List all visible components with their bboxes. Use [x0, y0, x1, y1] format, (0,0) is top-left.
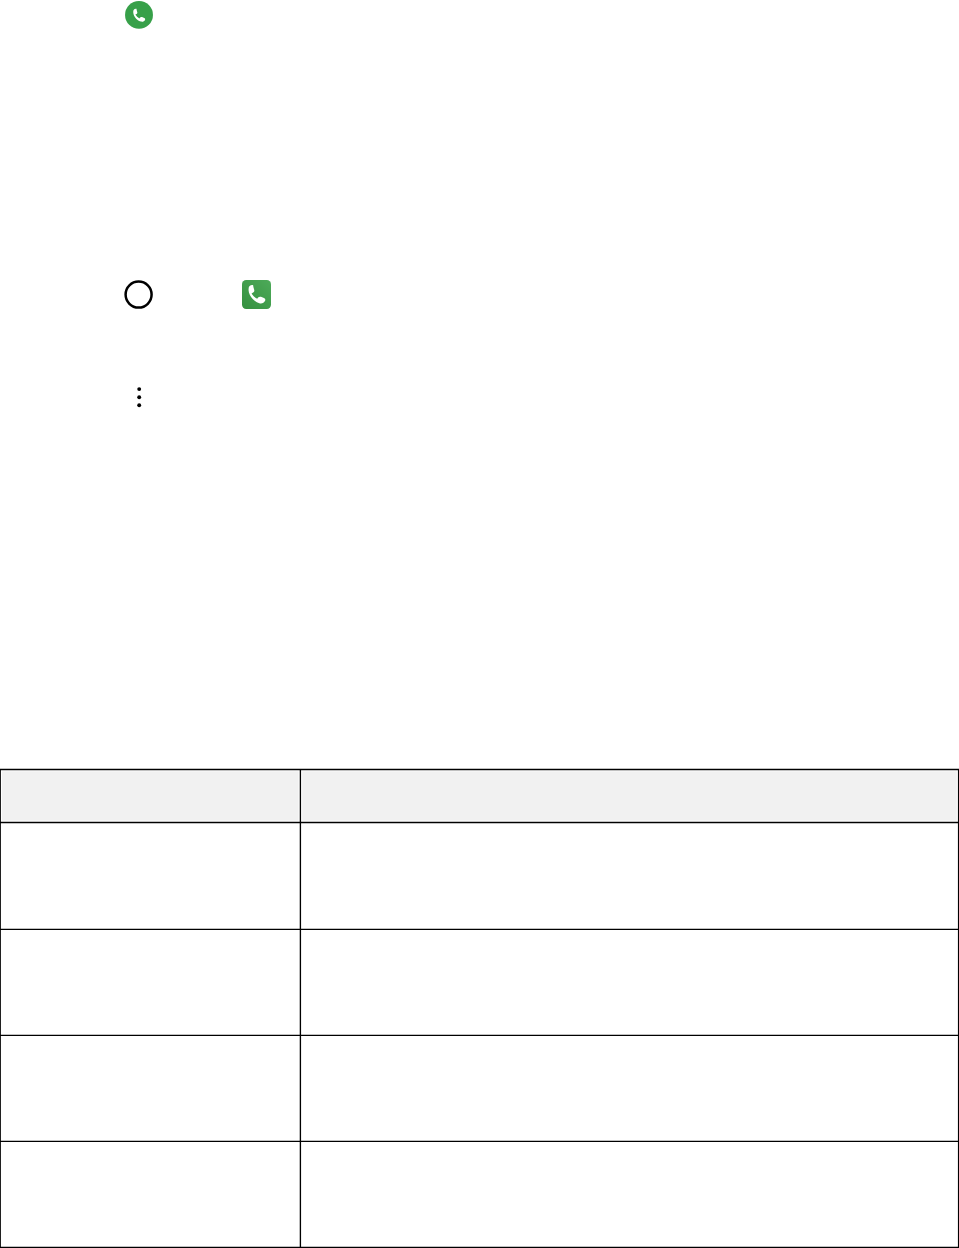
- button[interactable]: [300, 929, 959, 1035]
- button[interactable]: [300, 1035, 959, 1141]
- other: Table row 3: [0, 1035, 959, 1141]
- button[interactable]: Phone app: [242, 280, 271, 309]
- other: Table row 4: [0, 1141, 959, 1248]
- button[interactable]: Call: [125, 1, 153, 29]
- other: Table row 1: [0, 822, 959, 929]
- button[interactable]: [0, 1141, 300, 1248]
- button[interactable]: [0, 769, 300, 822]
- button[interactable]: [300, 1141, 959, 1248]
- other: Table row 2: [0, 929, 959, 1035]
- button[interactable]: Home button: [124, 280, 154, 310]
- button[interactable]: [0, 822, 300, 929]
- button[interactable]: [0, 929, 300, 1035]
- button[interactable]: [0, 1035, 300, 1141]
- button[interactable]: [300, 769, 959, 822]
- button[interactable]: More options: [132, 382, 147, 410]
- button[interactable]: [300, 822, 959, 929]
- other: Column header row: [0, 769, 959, 822]
